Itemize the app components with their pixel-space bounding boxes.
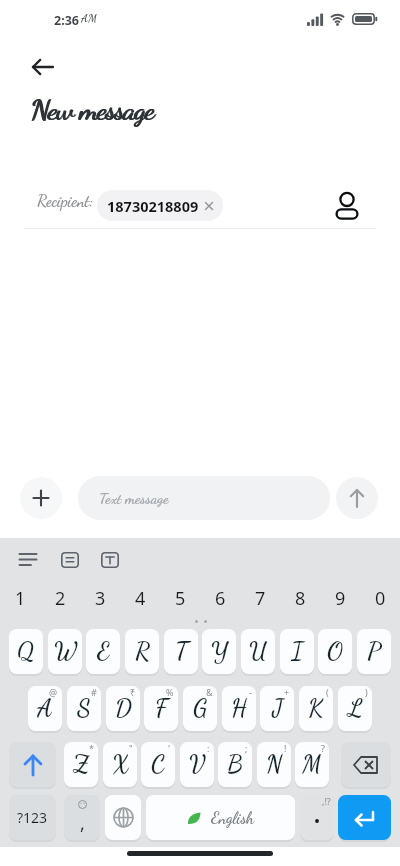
button[interactable]: Text message [78,476,330,520]
button[interactable]: E [86,629,120,674]
staticText: * [89,742,94,754]
button[interactable]: ,!? [300,795,334,840]
button[interactable]: 0 [360,580,400,616]
button[interactable]: + [260,686,294,731]
button[interactable]: ? [295,742,329,787]
button[interactable] [19,553,37,566]
staticText: : [207,742,210,754]
button[interactable]: ; [218,742,252,787]
staticText: E [97,637,110,666]
button[interactable] [61,552,79,568]
button[interactable]: 5 [160,580,200,616]
staticText: 0 [375,586,386,611]
button[interactable]: English [146,795,295,840]
button[interactable]: T [164,629,198,674]
button[interactable]: ₹ [106,686,140,731]
staticText: 18730218809 [107,196,199,216]
button[interactable]: P [357,629,391,674]
button[interactable]: ' [141,742,175,787]
button[interactable]: U [241,629,275,674]
staticText: J [272,694,283,723]
staticText: 3 [95,586,106,611]
button[interactable] [328,185,366,223]
staticText: B [227,750,243,779]
staticText: Text message [99,489,169,507]
staticText: Q [17,637,35,666]
button[interactable]: I [280,629,314,674]
button[interactable]: " [103,742,137,787]
staticText: U [249,637,267,666]
staticText: D [115,694,132,723]
staticText: ?123 [17,808,48,827]
button[interactable]: % [144,686,178,731]
staticText: T [175,637,188,666]
button[interactable]: 4 [120,580,160,616]
button[interactable]: R [125,629,159,674]
button[interactable]: W [48,629,82,674]
staticText: ? [321,742,325,754]
staticText: " [129,742,133,754]
staticText: O [327,637,343,666]
button[interactable]: & [183,686,217,731]
button[interactable] [341,742,391,787]
staticText: % [166,686,174,698]
staticText: 6 [215,586,226,611]
staticText: 9 [335,586,346,611]
button[interactable]: 1 [0,580,40,616]
staticText: @ [49,686,58,698]
staticText: 7 [255,586,266,611]
button[interactable]: ( [299,686,333,731]
staticText: ! [284,742,287,754]
button[interactable]: , [64,795,100,840]
staticText: New message [30,92,154,127]
staticText: S [77,694,91,723]
staticText: # [91,686,97,698]
button[interactable]: O [318,629,352,674]
staticText: + [284,686,290,698]
staticText: ,!? [322,795,331,807]
button[interactable]: # [67,686,101,731]
button[interactable]: 2 [40,580,80,616]
staticText: Z [73,750,90,779]
staticText: F [155,694,168,723]
button[interactable]: Y [202,629,236,674]
staticText: C [151,750,165,779]
button[interactable] [101,552,119,568]
button[interactable] [105,795,141,840]
button[interactable]: 9 [320,580,360,616]
staticText: 1 [15,586,26,611]
button[interactable] [336,477,378,519]
button[interactable]: 6 [200,580,240,616]
staticText: L [348,694,363,723]
button[interactable]: @ [28,686,62,731]
staticText: G [193,694,208,723]
staticText: , [80,811,85,836]
button[interactable]: : [180,742,214,787]
button[interactable]: 8 [280,580,320,616]
button[interactable]: ?123 [9,795,56,840]
button[interactable]: ) [338,686,372,731]
staticText: R [135,637,150,666]
button[interactable] [9,742,56,787]
button[interactable]: - [222,686,256,731]
button[interactable]: 18730218809 [97,190,223,221]
button[interactable]: ! [257,742,291,787]
staticText: ' [168,742,171,754]
staticText: ₹ [130,686,136,698]
staticText: A [37,694,53,723]
button[interactable] [338,795,391,840]
staticText: W [54,637,77,666]
staticText: N [266,750,283,779]
staticText: ; [245,742,248,754]
staticText: M [302,750,322,779]
button[interactable]: 3 [80,580,120,616]
button[interactable]: 7 [240,580,280,616]
button[interactable]: Q [9,629,43,674]
staticText: Recipient: [37,191,94,210]
staticText: Y [211,637,228,666]
button[interactable]: * [64,742,98,787]
staticText: 2:36 [54,12,79,29]
button[interactable] [20,477,62,519]
button[interactable] [24,48,62,85]
staticText: & [206,686,213,698]
